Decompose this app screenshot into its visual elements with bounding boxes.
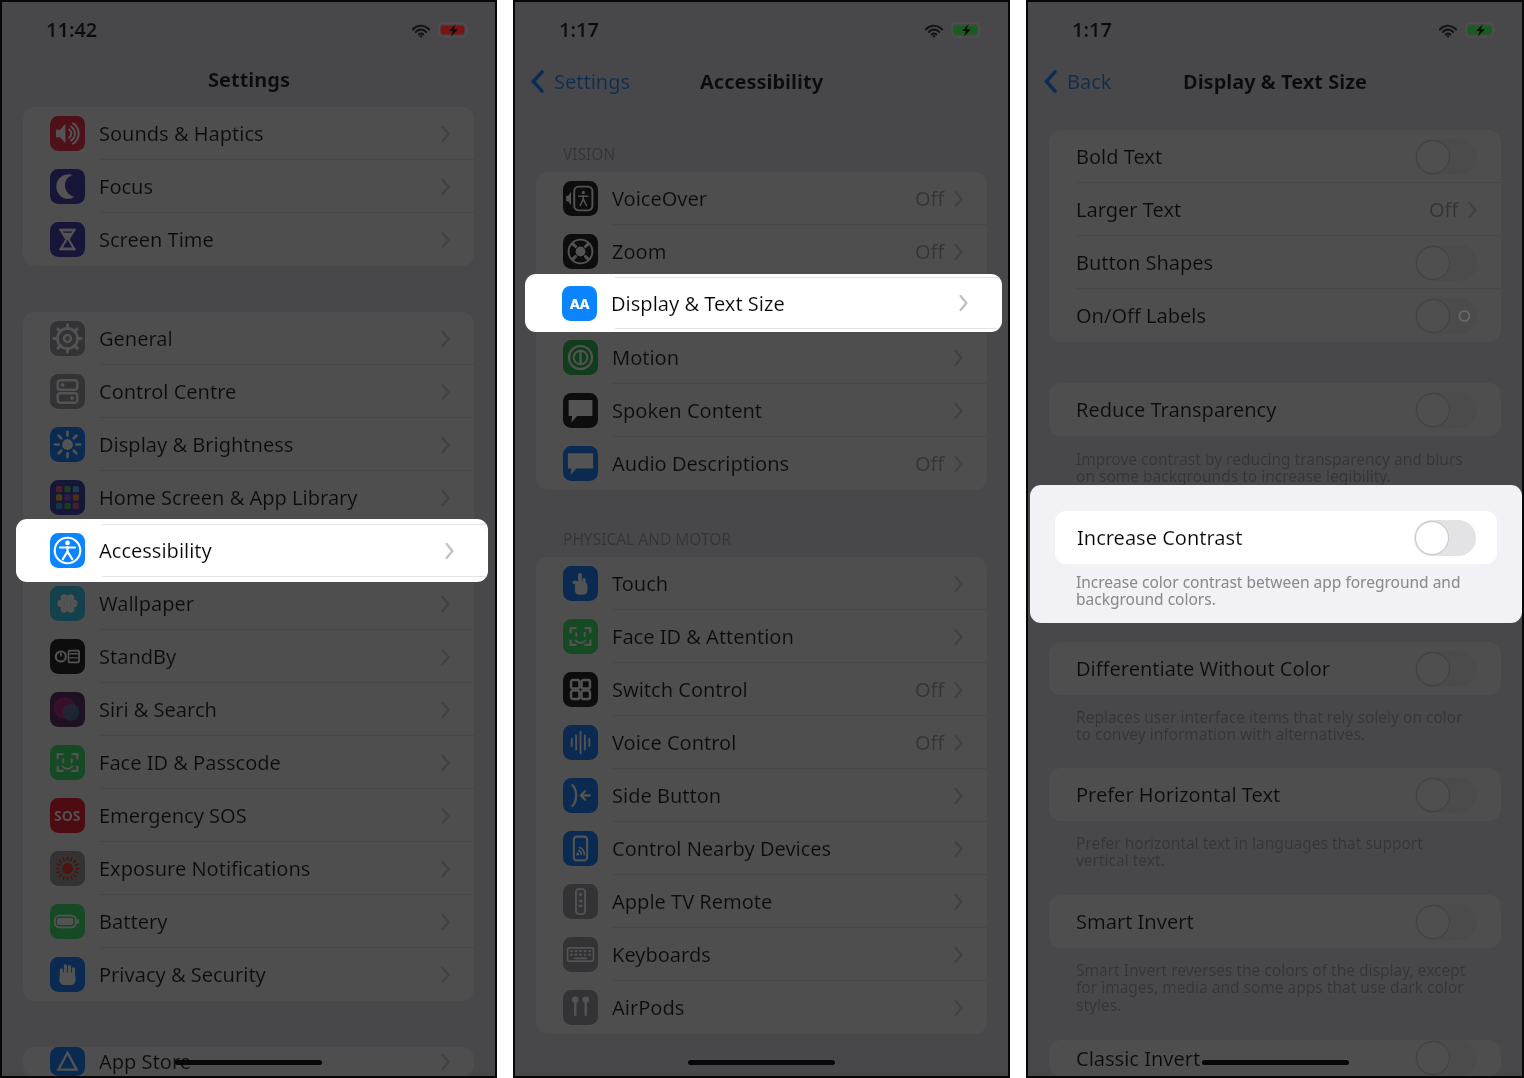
staticText: Off <box>915 238 945 265</box>
button[interactable]: Switch Control <box>536 663 987 716</box>
staticText: Keyboards <box>612 941 711 968</box>
button[interactable]: Battery <box>23 895 474 948</box>
button[interactable]: Home Screen & App Library <box>23 471 474 524</box>
button[interactable]: Face ID & Attention <box>536 610 987 663</box>
button[interactable]: Display & Brightness <box>23 418 474 471</box>
button[interactable]: Motion <box>536 331 987 384</box>
staticText: AA <box>570 294 590 313</box>
staticText: Accessibility <box>99 537 212 564</box>
staticText: 1:17 <box>1072 16 1112 43</box>
staticText: Increase Contrast <box>1076 529 1242 556</box>
staticText: Control Nearby Devices <box>612 835 832 862</box>
button[interactable]: Privacy & Security <box>23 948 474 1001</box>
staticText: Off <box>915 676 945 703</box>
staticText: Differentiate Without Color <box>1076 655 1331 682</box>
button[interactable]: Spoken Content <box>536 384 987 437</box>
button[interactable]: Increase Contrast <box>1055 511 1497 564</box>
button[interactable]: Apple TV Remote <box>536 875 987 928</box>
button[interactable]: Accessibility <box>16 519 488 582</box>
staticText: Back <box>1067 68 1112 95</box>
button[interactable]: Larger Text <box>1049 183 1501 236</box>
staticText: Display & Text Size <box>611 290 785 317</box>
button[interactable]: Toggle Increase Contrast <box>1414 520 1476 556</box>
staticText: VISION <box>563 143 616 164</box>
staticText: Exposure Notifications <box>99 855 311 882</box>
staticText: Off <box>1429 196 1459 223</box>
staticText: Increase color contrast between app fore… <box>1076 580 1467 619</box>
button[interactable]: Prefer Horizontal Text <box>1049 768 1501 821</box>
staticText: Display & Text Size <box>1183 68 1367 95</box>
button[interactable]: Control Centre <box>23 365 474 418</box>
button[interactable]: Bold Text <box>1049 130 1501 183</box>
button[interactable]: Touch <box>536 557 987 610</box>
button[interactable]: General <box>23 312 474 365</box>
button[interactable]: Reduce Transparency <box>1049 383 1501 436</box>
button[interactable]: SOS <box>23 789 474 842</box>
staticText: SOS <box>54 806 81 825</box>
button[interactable]: Accessibility <box>16 519 488 582</box>
button[interactable]: Exposure Notifications <box>23 842 474 895</box>
staticText: Increase Contrast <box>1077 524 1243 551</box>
staticText: Settings <box>554 68 631 95</box>
staticText: 1:17 <box>559 16 599 43</box>
staticText: General <box>99 325 173 352</box>
button[interactable]: Differentiate Without Color <box>1049 642 1501 695</box>
staticText: Accessibility <box>99 537 212 564</box>
staticText: Touch <box>612 570 669 597</box>
staticText: 11:42 <box>46 16 98 43</box>
button[interactable]: Side Button <box>536 769 987 822</box>
button[interactable]: Toggle On/Off Labels <box>1415 298 1477 334</box>
button[interactable]: Increase Contrast <box>1055 511 1497 564</box>
staticText: Zoom <box>612 238 667 265</box>
button[interactable]: Back <box>1044 68 1112 95</box>
button[interactable]: Classic Invert <box>1049 1040 1501 1076</box>
staticText: Off <box>915 185 945 212</box>
button[interactable]: Accessibility <box>23 524 474 577</box>
button[interactable]: AA <box>536 278 987 331</box>
button[interactable]: Sounds & Haptics <box>23 107 474 160</box>
staticText: Voice Control <box>612 729 737 756</box>
staticText: Privacy & Security <box>99 961 266 988</box>
staticText: VoiceOver <box>612 185 708 212</box>
staticText: AA <box>571 295 591 314</box>
staticText: Switch Control <box>612 676 748 703</box>
button[interactable]: Focus <box>23 160 474 213</box>
staticText: Battery <box>99 908 168 935</box>
button[interactable]: AA <box>525 274 1002 332</box>
button[interactable]: Voice Control <box>536 716 987 769</box>
button[interactable]: Button Shapes <box>1049 236 1501 289</box>
staticText: Larger Text <box>1076 196 1182 223</box>
staticText: StandBy <box>99 643 177 670</box>
button[interactable]: Keyboards <box>536 928 987 981</box>
button[interactable]: Screen Time <box>23 213 474 266</box>
button[interactable]: StandBy <box>23 630 474 683</box>
button[interactable]: Settings <box>531 68 631 95</box>
button[interactable]: Zoom <box>536 225 987 278</box>
button[interactable]: Face ID & Passcode <box>23 736 474 789</box>
staticText: On/Off Labels <box>1076 302 1207 329</box>
button[interactable]: Increase Contrast <box>1049 516 1501 569</box>
staticText: Increase color contrast between app fore… <box>1076 571 1482 610</box>
button[interactable]: Audio Descriptions <box>536 437 987 490</box>
button[interactable]: Control Nearby Devices <box>536 822 987 875</box>
button[interactable]: Smart Invert <box>1049 895 1501 948</box>
button[interactable]: App Store <box>23 1047 474 1076</box>
staticText: Home Screen & App Library <box>99 484 358 511</box>
button[interactable]: Wallpaper <box>23 577 474 630</box>
staticText: Motion <box>612 344 680 371</box>
button[interactable]: Toggle Increase Contrast <box>1415 525 1477 561</box>
button[interactable]: On/Off Labels <box>1049 289 1501 342</box>
button[interactable]: VoiceOver <box>536 172 987 225</box>
button[interactable]: Siri & Search <box>23 683 474 736</box>
staticText: Classic Invert <box>1076 1045 1201 1072</box>
staticText: Siri & Search <box>99 696 217 723</box>
button[interactable]: AA <box>525 274 1002 332</box>
button[interactable]: AirPods <box>536 981 987 1034</box>
